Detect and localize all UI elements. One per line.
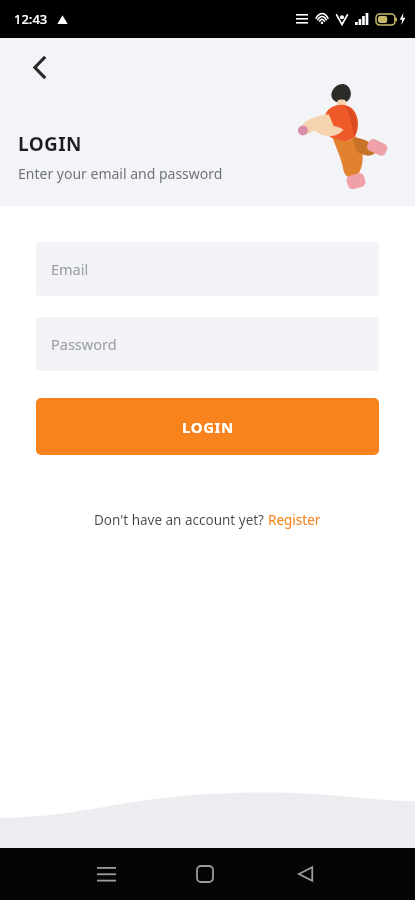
staticText: Enter your email and password xyxy=(18,164,223,183)
button[interactable]: Back xyxy=(277,848,333,900)
button[interactable]: Recent apps xyxy=(78,848,134,900)
staticText: 12:43 xyxy=(14,10,48,28)
staticText: Password xyxy=(51,334,117,354)
button[interactable]: Email xyxy=(36,242,379,296)
staticText: Don't have an account yet? xyxy=(94,511,268,529)
button[interactable]: Password xyxy=(36,317,379,371)
staticText: Email xyxy=(51,259,89,279)
button[interactable]: Home xyxy=(177,848,233,900)
button[interactable]: LOGIN xyxy=(36,398,379,455)
button[interactable]: Back xyxy=(20,48,58,86)
staticText: LOGIN xyxy=(18,131,82,157)
button[interactable]: Register xyxy=(268,511,321,529)
staticText: Register xyxy=(268,511,321,529)
staticText: LOGIN xyxy=(182,417,234,437)
